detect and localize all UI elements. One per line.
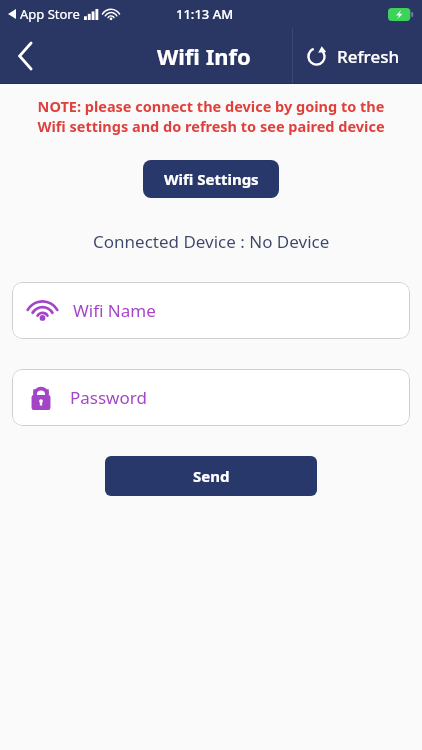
button[interactable]: Back bbox=[0, 28, 52, 84]
staticText: Wifi Info bbox=[157, 41, 251, 71]
staticText: Password bbox=[70, 386, 147, 409]
staticText: Send bbox=[193, 466, 230, 486]
staticText: NOTE: please connect the device by going… bbox=[10, 96, 412, 136]
staticText: Refresh bbox=[337, 45, 400, 68]
staticText: Wifi Settings bbox=[164, 169, 259, 189]
staticText: App Store bbox=[20, 5, 80, 23]
button[interactable]: Wifi Name bbox=[12, 282, 410, 339]
staticText: 11:13 AM bbox=[176, 5, 234, 23]
button[interactable]: Password bbox=[12, 369, 410, 426]
staticText: Wifi Name bbox=[73, 299, 156, 322]
staticText: Connected Device : No Device bbox=[93, 230, 330, 253]
button[interactable]: Refresh bbox=[292, 28, 422, 84]
button[interactable]: Wifi Settings bbox=[143, 160, 279, 198]
button[interactable]: Send bbox=[105, 456, 317, 496]
